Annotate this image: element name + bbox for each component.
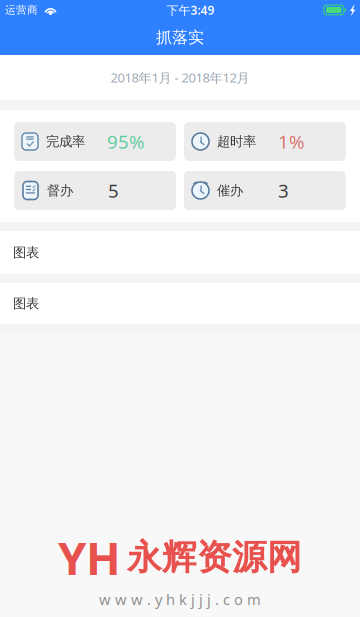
staticText: 下午3:49	[166, 2, 214, 18]
staticText: 催办	[217, 182, 243, 199]
staticText: 3	[278, 178, 289, 203]
button[interactable]: 2018年1月 - 2018年12月	[0, 55, 360, 100]
staticText: 抓落实	[156, 28, 204, 47]
staticText: 1%	[278, 129, 305, 154]
button[interactable]: 完成率	[14, 122, 176, 161]
staticText: 5	[108, 178, 119, 203]
button[interactable]: 超时率	[184, 122, 346, 161]
staticText: 督办	[47, 182, 73, 199]
staticText: 超时率	[217, 133, 256, 150]
button[interactable]: 督办	[14, 171, 176, 210]
staticText: 图表	[13, 295, 39, 312]
staticText: 运营商	[5, 3, 38, 16]
staticText: 永辉资源网	[127, 536, 302, 579]
staticText: 图表	[13, 244, 39, 261]
staticText: 95%	[107, 129, 145, 154]
button[interactable]: 催办	[184, 171, 346, 210]
button[interactable]: 图表	[0, 283, 360, 324]
staticText: w w w . y h k j j j . c o m	[99, 589, 261, 609]
staticText: 2018年1月 - 2018年12月	[110, 69, 249, 86]
button[interactable]: 图表	[0, 231, 360, 274]
staticText: YH	[58, 527, 121, 587]
staticText: 完成率	[46, 133, 85, 150]
